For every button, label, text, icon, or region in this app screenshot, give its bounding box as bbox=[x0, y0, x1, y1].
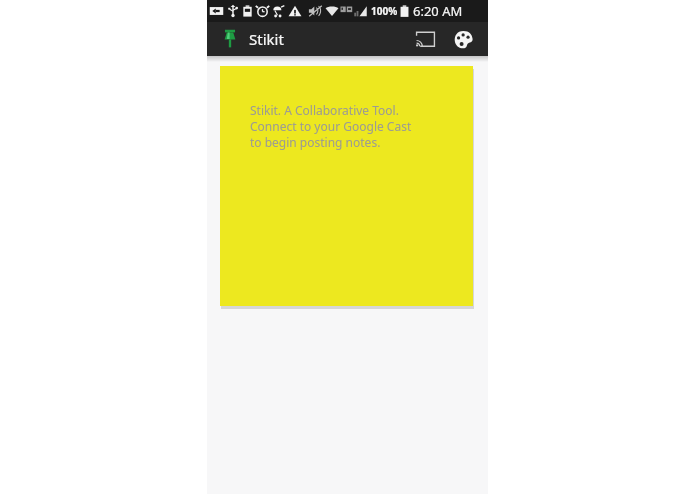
button[interactable]: Choose color bbox=[446, 22, 480, 56]
staticText: 100% bbox=[371, 4, 398, 18]
staticText: Stikit bbox=[249, 29, 284, 49]
button[interactable]: Cast bbox=[408, 22, 442, 56]
button[interactable]: Stikit. A Collaborative Tool. Connect to… bbox=[220, 66, 473, 306]
staticText: Stikit. A Collaborative Tool. Connect to… bbox=[250, 102, 412, 150]
staticText: 6:20 AM bbox=[413, 2, 463, 20]
